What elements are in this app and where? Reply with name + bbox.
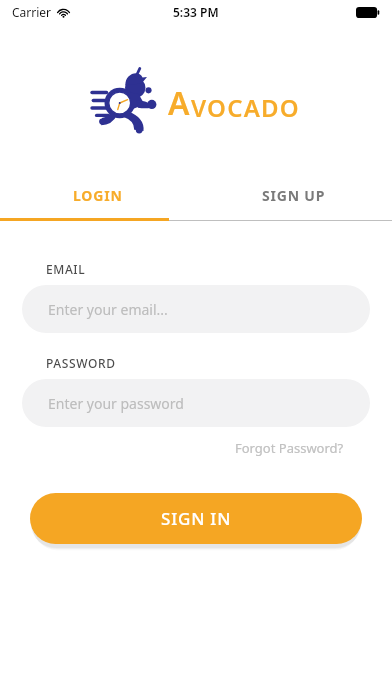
staticText: Enter your email... [48, 300, 168, 319]
button[interactable]: Forgot Password? [233, 437, 346, 459]
button[interactable]: SIGN IN [30, 493, 362, 544]
staticText: Forgot Password? [235, 439, 344, 457]
staticText: A [168, 81, 191, 125]
staticText: LOGIN [73, 186, 123, 205]
button[interactable]: LOGIN [0, 178, 196, 212]
staticText: 5:33 PM [173, 4, 219, 20]
staticText: SIGN UP [262, 186, 326, 205]
staticText: PASSWORD [46, 355, 116, 371]
staticText: Carrier [12, 4, 52, 20]
staticText: VOCADO [191, 91, 300, 124]
button[interactable]: Enter your email... [22, 285, 370, 333]
button[interactable]: Enter your password [22, 379, 370, 427]
staticText: Enter your password [48, 394, 184, 413]
staticText: SIGN IN [161, 507, 232, 530]
button[interactable]: SIGN UP [196, 178, 392, 212]
staticText: EMAIL [46, 261, 86, 277]
